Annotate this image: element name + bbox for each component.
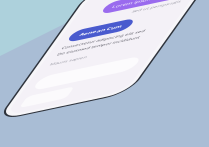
staticText: Sed ut perspiciatis [96,77,165,88]
staticText: Aenean Cum [37,110,96,122]
staticText: Lorem ipsum dolor sit [58,51,153,64]
